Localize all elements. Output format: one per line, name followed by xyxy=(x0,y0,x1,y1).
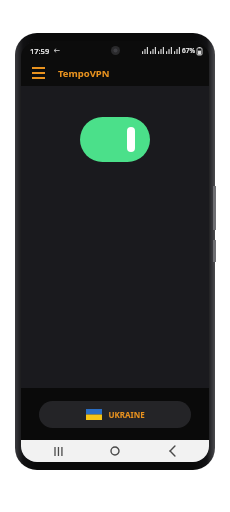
staticText: TempoVPN xyxy=(58,67,110,80)
button[interactable]: Recent apps xyxy=(38,440,78,462)
button[interactable]: UKRAINE xyxy=(39,401,191,428)
staticText: 17:59 xyxy=(30,46,50,56)
staticText: 67% xyxy=(182,46,195,55)
button[interactable]: Home xyxy=(95,440,135,462)
staticText: UKRAINE xyxy=(108,409,145,420)
button[interactable]: VPN connection toggle, on xyxy=(80,117,150,162)
button[interactable]: Back xyxy=(152,440,192,462)
button[interactable]: Open navigation menu xyxy=(28,63,48,83)
